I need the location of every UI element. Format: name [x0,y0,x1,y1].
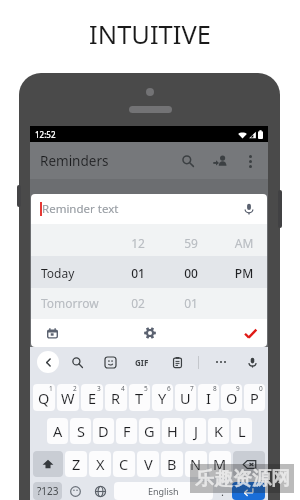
button[interactable]: K [208,418,229,444]
staticText: Z [72,454,81,474]
staticText: C [119,454,129,474]
button[interactable]: V [137,451,159,477]
staticText: 5 [144,384,148,393]
button[interactable]: Voice input [238,198,260,220]
staticText: 7 [190,384,194,393]
button[interactable]: G [139,418,160,444]
staticText: J [194,421,198,441]
staticText: T [135,388,144,408]
staticText: I [206,388,211,408]
staticText: 乐趣资源网 [195,467,290,491]
button[interactable]: H [162,418,183,444]
button[interactable]: Voice [241,351,263,373]
button[interactable]: Y [152,384,173,411]
button[interactable]: 12 [31,228,267,258]
button[interactable]: E [81,384,103,411]
button[interactable]: ?123 [33,482,62,500]
staticText: F [123,421,131,441]
button[interactable]: R [105,384,127,411]
staticText: H [167,421,178,441]
button[interactable]: D [93,418,114,444]
button[interactable]: Z [65,451,87,477]
button[interactable]: X [89,451,111,477]
button[interactable]: More [210,351,232,373]
staticText: GIF [135,357,149,368]
staticText: 8 [213,384,217,393]
staticText: O [226,388,238,408]
staticText: K [214,421,223,441]
staticText: Q [38,388,50,408]
button[interactable]: Search [66,351,88,373]
button[interactable]: Stickers [99,351,121,373]
button[interactable]: Add person [208,149,232,173]
staticText: 4 [121,384,125,393]
button[interactable]: Back [37,351,59,373]
staticText: B [167,454,177,474]
button[interactable]: . [215,482,230,500]
staticText: 59 [176,235,206,251]
staticText: A [53,421,63,441]
button[interactable]: P [244,384,265,411]
staticText: AM [229,235,259,251]
staticText: 9 [236,384,240,393]
staticText: . [221,484,224,499]
button[interactable]: Pick date [39,320,65,346]
button[interactable]: B [161,451,183,477]
button[interactable]: Search [176,149,200,173]
staticText: P [250,388,259,408]
staticText: W [61,388,75,408]
staticText: 12:52 [35,129,56,140]
staticText: 12 [123,235,153,251]
staticText: 01 [123,265,153,281]
staticText: INTUITIVE [0,17,300,52]
staticText: E [88,388,97,408]
button[interactable]: Tomorrow [31,288,267,318]
button[interactable]: Clipboard [166,351,188,373]
button[interactable]: GIF [130,351,154,373]
staticText: 2 [73,384,77,393]
button[interactable]: C [113,451,135,477]
staticText: N [190,454,202,474]
staticText: M [213,454,227,474]
button[interactable]: M [209,451,231,477]
button[interactable]: O [221,384,242,411]
button[interactable]: S [70,418,91,444]
staticText: Y [158,388,167,408]
staticText: English [148,485,179,497]
button[interactable]: T [129,384,150,411]
button[interactable]: A [47,418,68,444]
staticText: 01 [176,295,206,311]
button[interactable]: Q [33,384,55,411]
button[interactable]: Emoji [64,482,87,500]
staticText: Reminder text [42,201,119,217]
button[interactable]: I [198,384,219,411]
button[interactable]: Shift [33,451,63,477]
button[interactable]: F [116,418,137,444]
button[interactable]: Settings [137,320,163,346]
button[interactable]: N [185,451,207,477]
staticText: Today [41,265,75,281]
staticText: 6 [167,384,171,393]
button[interactable]: W [57,384,79,411]
staticText: S [77,421,85,441]
staticText: R [111,388,121,408]
button[interactable]: Language [89,482,112,500]
staticText: Tomorrow [41,295,99,311]
staticText: 00 [176,265,206,281]
button[interactable]: English [114,482,213,500]
staticText: D [98,421,109,441]
button[interactable]: J [185,418,206,444]
staticText: X [96,454,105,474]
button[interactable]: Enter [232,482,265,500]
button[interactable]: Today [31,258,267,288]
button[interactable]: U [175,384,196,411]
staticText: Reminders [40,152,109,170]
button[interactable]: L [231,418,252,444]
button[interactable]: Done [237,320,263,346]
staticText: U [180,388,191,408]
staticText: 3 [97,384,101,393]
staticText: 02 [123,295,153,311]
button[interactable]: More options [238,149,262,173]
button[interactable]: Backspace [233,451,265,477]
